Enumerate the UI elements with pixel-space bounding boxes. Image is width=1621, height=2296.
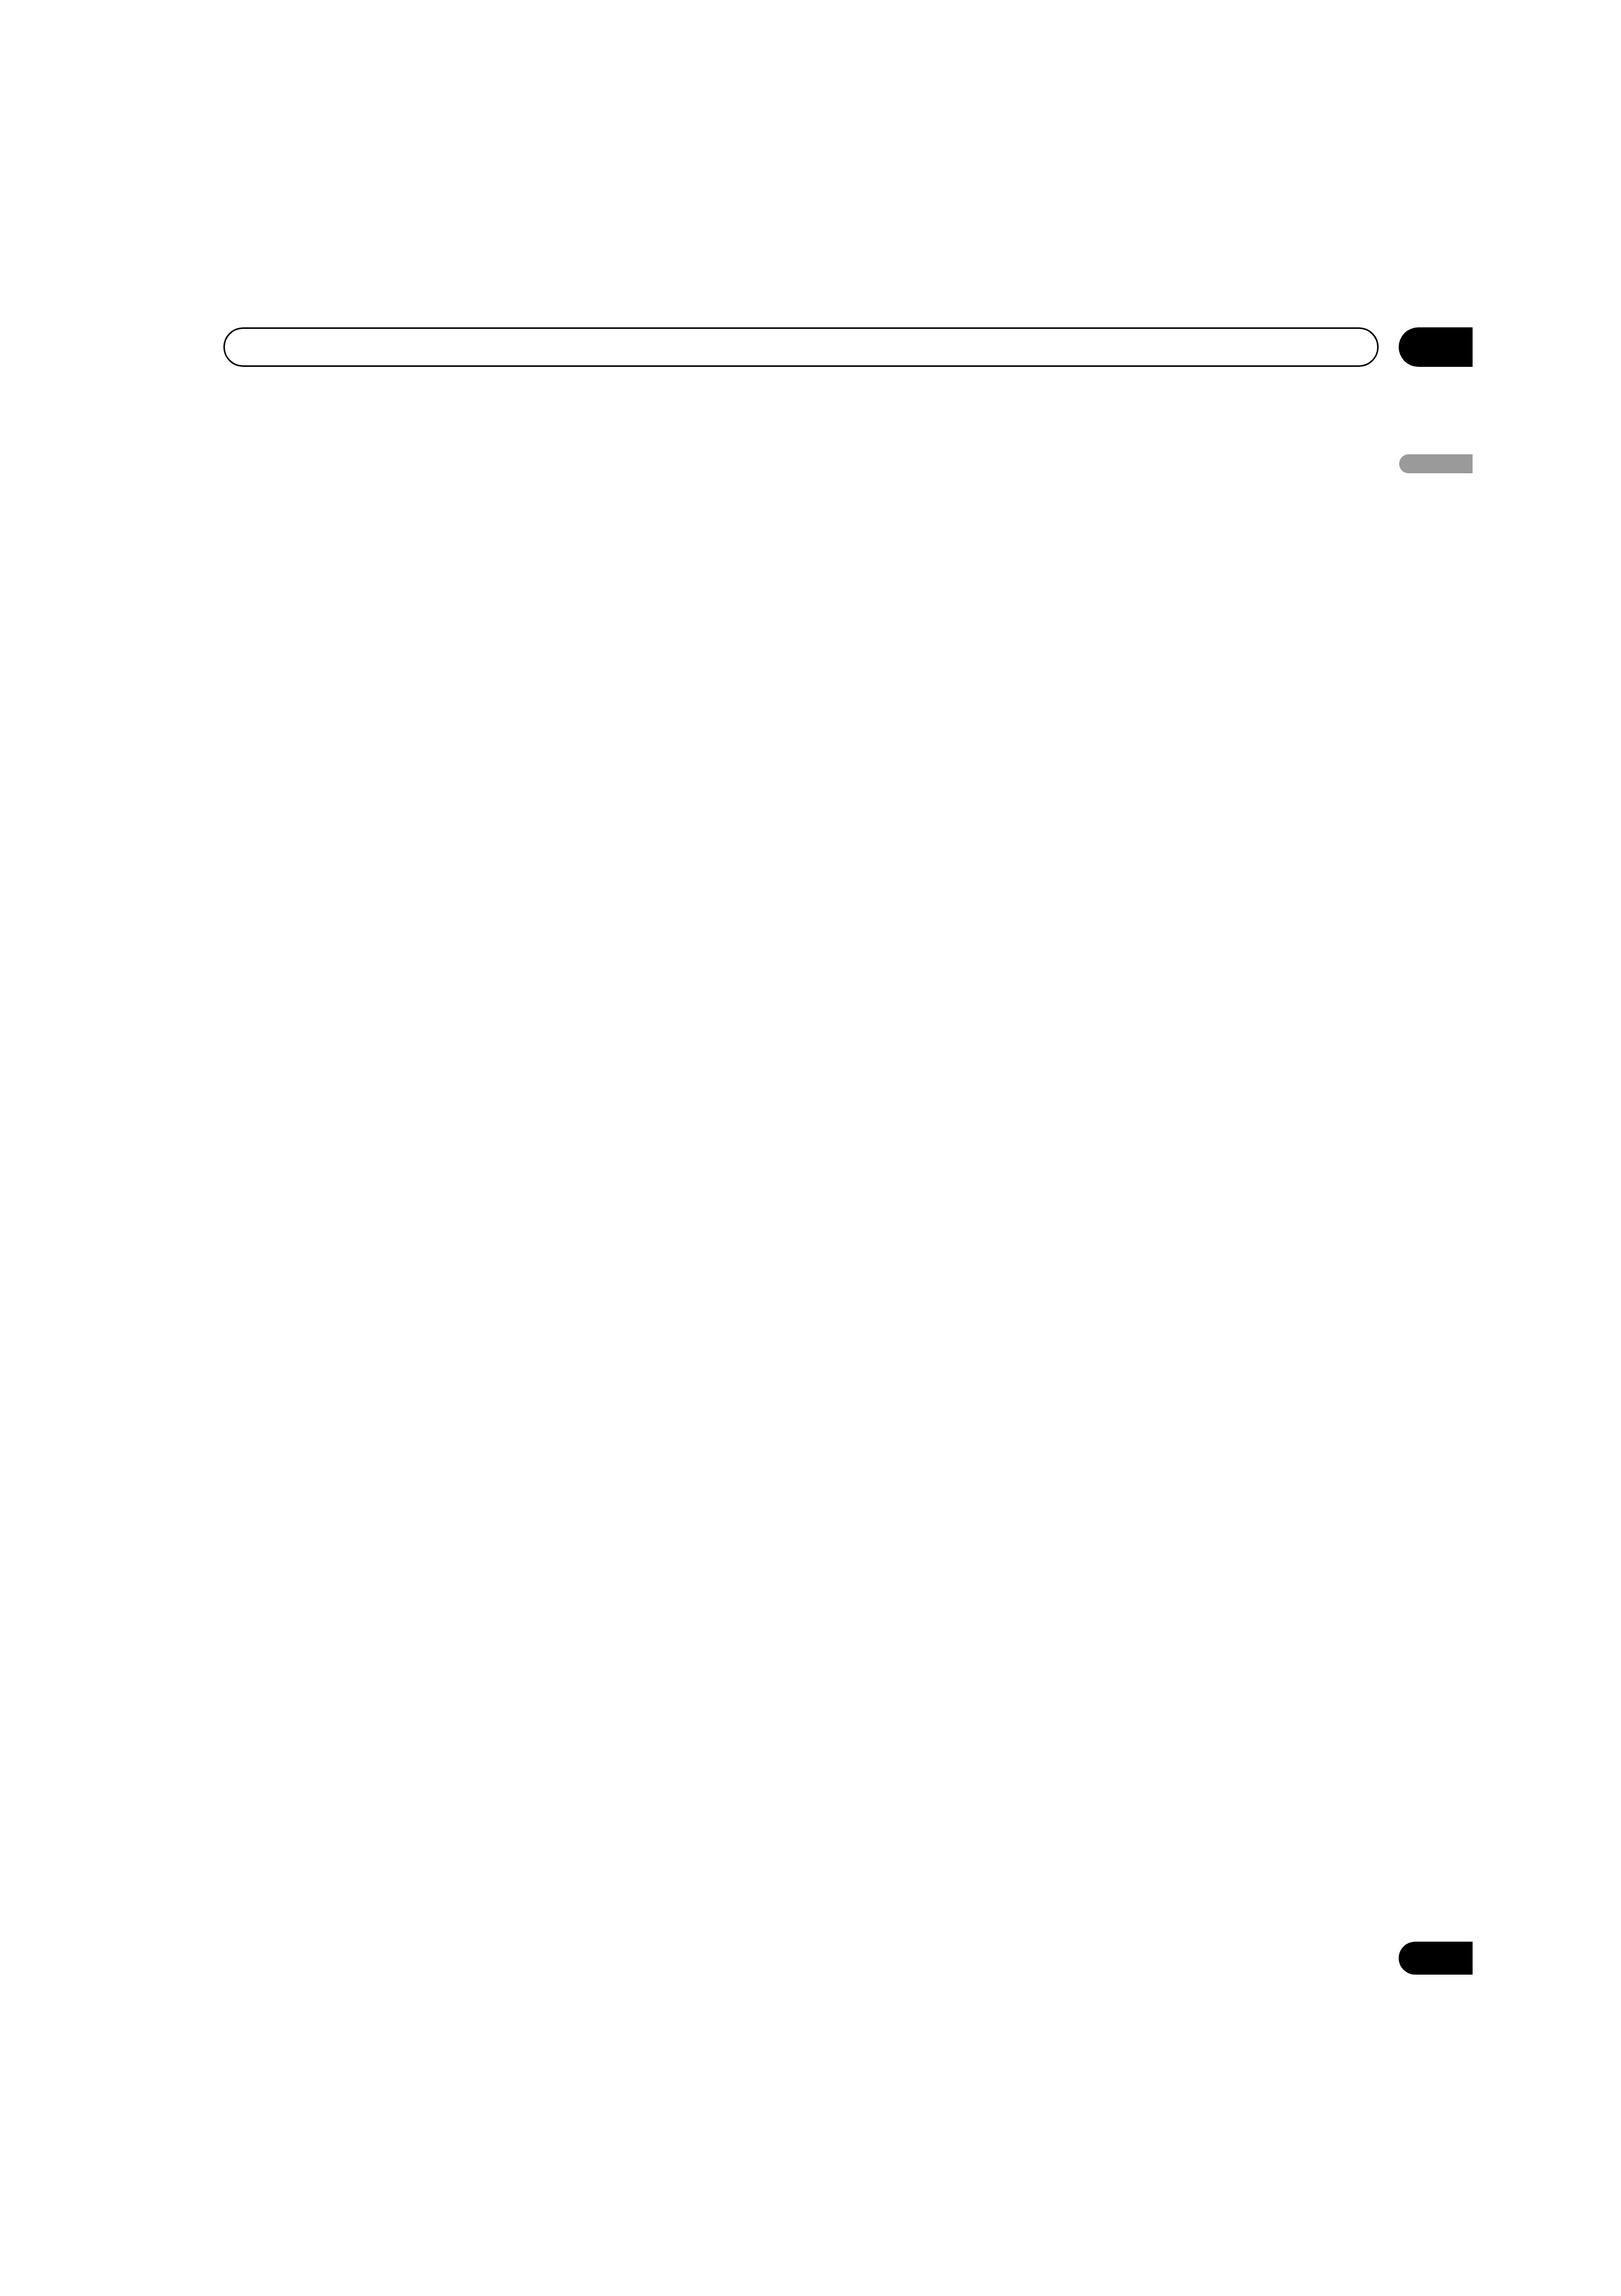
button[interactable]: Open account (1399, 327, 1473, 367)
button[interactable]: Search (223, 327, 1379, 367)
button[interactable]: Add (1399, 1942, 1473, 1975)
